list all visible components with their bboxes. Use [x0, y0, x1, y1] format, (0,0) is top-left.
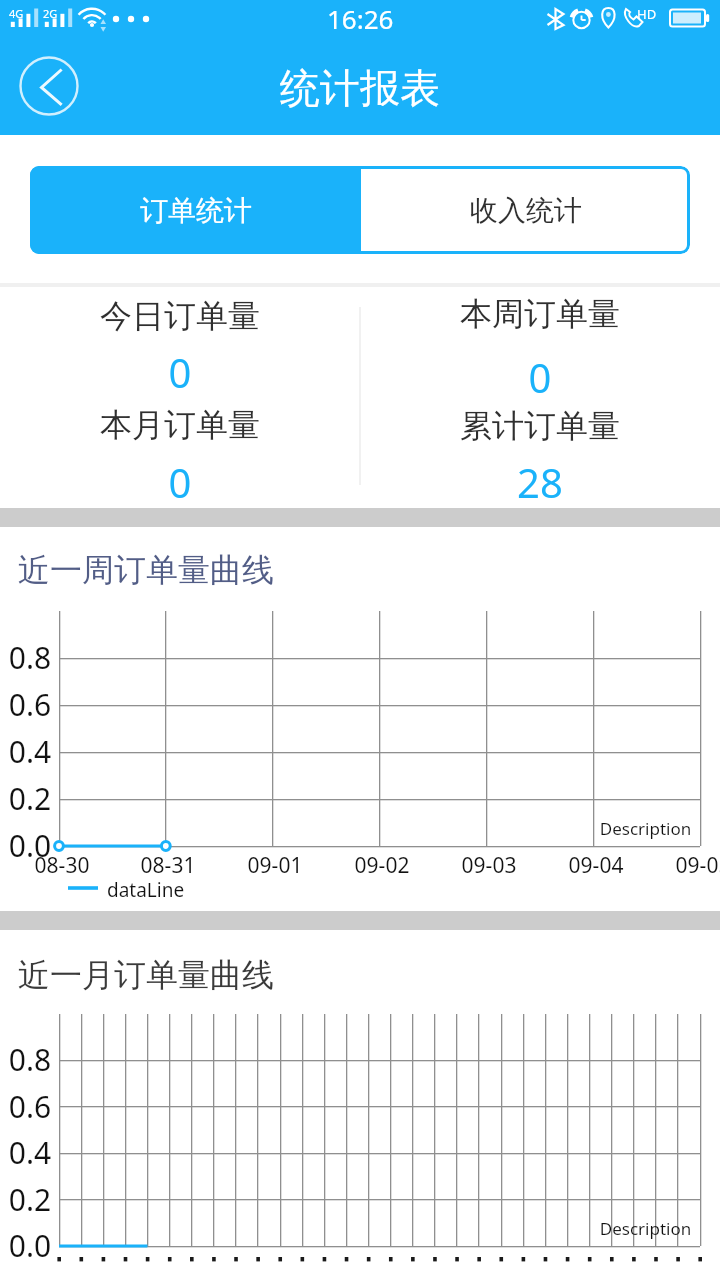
staticText: 累计订单量: [360, 406, 720, 446]
staticText: 16:26: [327, 1, 394, 36]
staticText: 08-30: [17, 851, 107, 880]
staticText: Description: [593, 1217, 698, 1240]
staticText: 4G: [9, 6, 24, 21]
staticText: 统计报表: [0, 63, 720, 113]
button[interactable]: 订单统计: [30, 166, 361, 254]
staticText: 08-31: [123, 851, 213, 880]
staticText: Description: [593, 817, 698, 840]
staticText: 收入统计: [470, 193, 582, 228]
staticText: 本月订单量: [0, 405, 360, 445]
staticText: dataLine: [107, 877, 185, 903]
staticText: 0: [0, 455, 360, 509]
staticText: 09-05: [658, 851, 720, 880]
staticText: 近一周订单量曲线: [18, 550, 274, 590]
staticText: 0.4: [4, 731, 56, 772]
staticText: 0.8: [4, 1039, 56, 1080]
staticText: 09-01: [230, 851, 320, 880]
staticText: 2G: [43, 6, 58, 21]
staticText: 本周订单量: [360, 294, 720, 334]
staticText: 0.2: [4, 778, 56, 819]
staticText: 09-04: [551, 851, 641, 880]
staticText: 0.2: [4, 1179, 56, 1220]
staticText: HD: [637, 5, 657, 23]
staticText: 0.0: [4, 825, 56, 866]
staticText: 订单统计: [140, 193, 252, 228]
staticText: 0.4: [4, 1132, 56, 1173]
staticText: 0.8: [4, 637, 56, 678]
button[interactable]: 收入统计: [361, 166, 690, 254]
staticText: 0.0: [4, 1225, 56, 1266]
staticText: 0.6: [4, 684, 56, 725]
staticText: 09-02: [337, 851, 427, 880]
staticText: 0.6: [4, 1086, 56, 1127]
staticText: 28: [360, 455, 720, 509]
button[interactable]: Back: [14, 51, 84, 121]
staticText: 今日订单量: [0, 296, 360, 336]
staticText: 0: [0, 345, 360, 399]
staticText: 近一月订单量曲线: [18, 955, 274, 995]
staticText: 0: [360, 350, 720, 404]
staticText: 09-03: [444, 851, 534, 880]
